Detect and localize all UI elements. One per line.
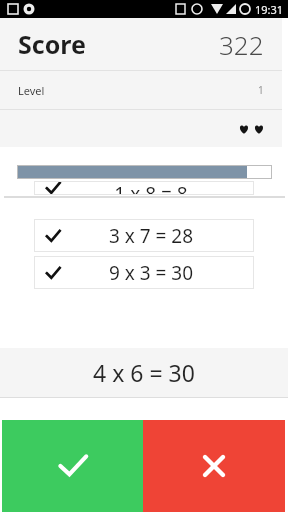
staticText: 322 (219, 27, 264, 62)
staticText: 3 x 7 = 28 (60, 223, 242, 249)
button[interactable]: 4 x 6 = 30 (0, 348, 288, 397)
button[interactable]: 3 x 7 = 28 (34, 219, 254, 252)
staticText: Score (18, 27, 86, 61)
staticText: 1 (258, 83, 264, 97)
button[interactable]: 9 x 3 = 30 (34, 256, 254, 289)
button[interactable]: Correct (2, 420, 143, 512)
button[interactable]: Score (0, 18, 282, 70)
staticText: 4 x 6 = 30 (93, 357, 195, 388)
staticText: 9 x 3 = 30 (60, 260, 242, 286)
staticText: 19:31 (255, 2, 284, 17)
button[interactable]: Wrong (143, 420, 285, 512)
staticText: Level (18, 83, 45, 98)
staticText: 1 x 8 = 8 (60, 181, 242, 195)
button[interactable]: Level (0, 71, 282, 109)
button[interactable] (0, 110, 282, 147)
